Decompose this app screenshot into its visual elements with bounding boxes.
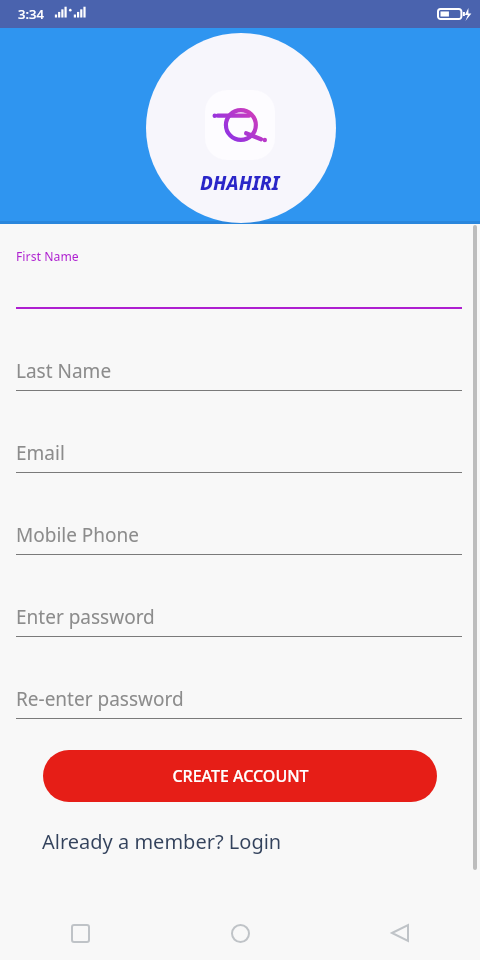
staticText: Last Name bbox=[16, 358, 112, 384]
button[interactable]: First Name bbox=[0, 236, 480, 318]
staticText: Email bbox=[16, 440, 65, 466]
staticText: First Name bbox=[16, 248, 79, 264]
button[interactable]: CREATE ACCOUNT bbox=[43, 750, 437, 802]
button[interactable]: Home bbox=[160, 906, 320, 960]
button[interactable]: Enter password bbox=[0, 564, 480, 646]
staticText: 3:34 bbox=[18, 5, 44, 23]
staticText: Enter password bbox=[16, 604, 155, 630]
button[interactable]: Recent apps bbox=[0, 906, 160, 960]
button[interactable]: Last Name bbox=[0, 318, 480, 400]
staticText: Mobile Phone bbox=[16, 522, 140, 548]
button[interactable]: Email bbox=[0, 400, 480, 482]
button[interactable]: Mobile Phone bbox=[0, 482, 480, 564]
staticText: DHAHIRI bbox=[200, 170, 280, 196]
staticText: Already a member? Login bbox=[42, 828, 282, 855]
staticText: CREATE ACCOUNT bbox=[172, 765, 309, 787]
button[interactable]: Already a member? Login bbox=[0, 828, 480, 856]
button[interactable]: Re-enter password bbox=[0, 646, 480, 728]
staticText: Re-enter password bbox=[16, 686, 184, 712]
button[interactable]: Back bbox=[320, 906, 480, 960]
